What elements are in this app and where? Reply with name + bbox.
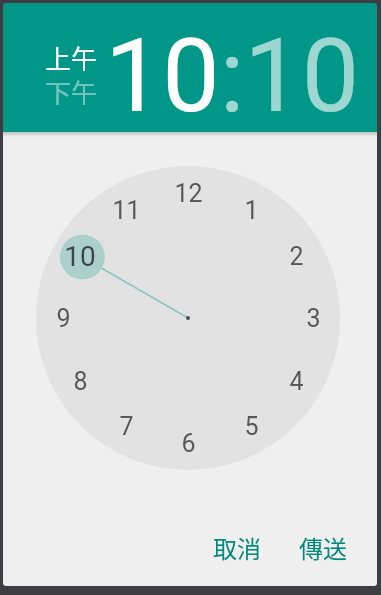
staticText: 上午 [45,39,98,71]
button[interactable]: 取消 [205,529,269,565]
button[interactable]: 1 [229,194,273,226]
button[interactable]: 傳送 [291,529,355,565]
button[interactable]: 12 [166,177,210,209]
staticText: 下午 [45,73,98,105]
staticText: 2 [289,242,304,271]
staticText: 10:10 [105,16,360,136]
staticText: 5 [244,412,259,441]
button[interactable]: 3 [291,302,335,334]
staticText: 6 [181,429,196,458]
staticText: 11 [112,196,141,225]
button[interactable]: 6 [166,427,210,459]
staticText: 8 [73,367,88,396]
button[interactable]: 8 [58,365,102,397]
button[interactable]: 上午 [43,39,99,71]
button[interactable]: 9 [41,302,85,334]
button[interactable]: 下午 [43,73,99,105]
staticText: 9 [56,304,71,333]
button[interactable]: 2 [274,240,318,272]
button[interactable]: 10 [58,240,102,272]
staticText: 4 [289,367,304,396]
button[interactable]: 5 [229,410,273,442]
staticText: 7 [119,412,134,441]
staticText: 3 [306,304,321,333]
button[interactable]: 4 [274,365,318,397]
staticText: 傳送 [299,530,347,565]
button[interactable]: 7 [104,410,148,442]
staticText: 10 [64,240,96,272]
staticText: 1 [244,196,259,225]
staticText: 12 [174,179,203,208]
button[interactable]: 11 [104,194,148,226]
staticText: 取消 [213,530,261,565]
